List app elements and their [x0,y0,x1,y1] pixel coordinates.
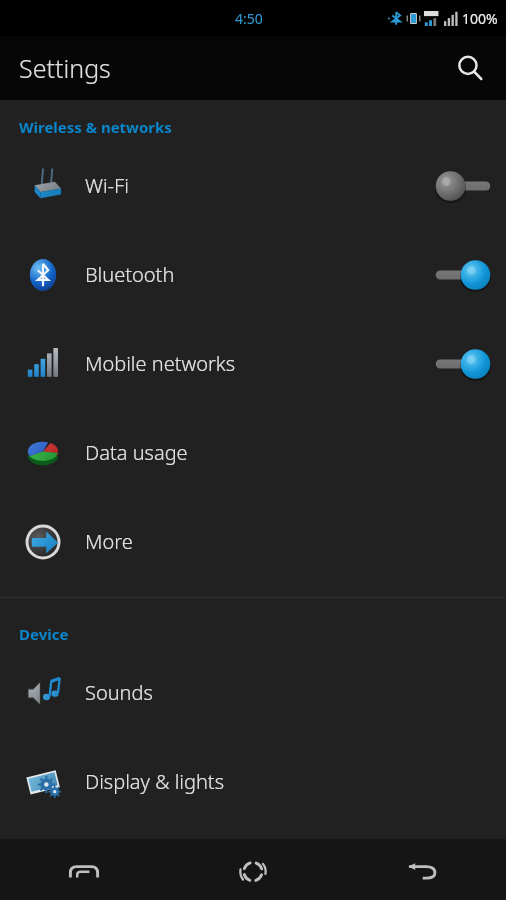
button[interactable]: Wi-Fi [0,141,506,230]
button[interactable]: Home [168,839,337,900]
staticText: Display & lights [85,768,432,795]
button[interactable]: More [0,497,506,586]
staticText: 100% [462,9,498,28]
button[interactable]: Off [432,166,494,206]
button[interactable]: On [432,255,494,295]
button[interactable]: Data usage [0,408,506,497]
button[interactable]: Recent apps [0,839,168,900]
staticText: Bluetooth [85,261,432,288]
staticText: Data usage [85,439,432,466]
staticText: Wireless & networks [19,117,172,141]
staticText: Wi-Fi [85,172,432,199]
staticText: Sounds [85,679,432,706]
button[interactable]: Back [337,839,506,900]
button[interactable]: On [432,344,494,384]
button[interactable]: Bluetooth [0,230,506,319]
button[interactable]: Search [442,40,498,96]
staticText: More [85,528,432,555]
button[interactable]: Sounds [0,648,506,737]
staticText: 4:50 [235,9,263,28]
button[interactable]: Mobile networks [0,319,506,408]
button[interactable]: Display & lights [0,737,506,826]
staticText: Device [19,624,69,648]
staticText: Mobile networks [85,350,432,377]
staticText: Settings [19,51,111,85]
